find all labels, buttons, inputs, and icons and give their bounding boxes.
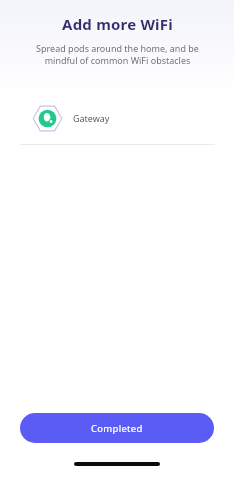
other: Gateway pod: [32, 103, 63, 134]
button[interactable]: Gateway pod: [0, 101, 234, 135]
staticText: Spread pods around the home, and be mind…: [36, 42, 199, 67]
staticText: Add more WiFi: [62, 14, 173, 34]
staticText: Completed: [91, 422, 143, 435]
staticText: Gateway: [73, 112, 110, 124]
button[interactable]: Completed: [20, 413, 214, 443]
